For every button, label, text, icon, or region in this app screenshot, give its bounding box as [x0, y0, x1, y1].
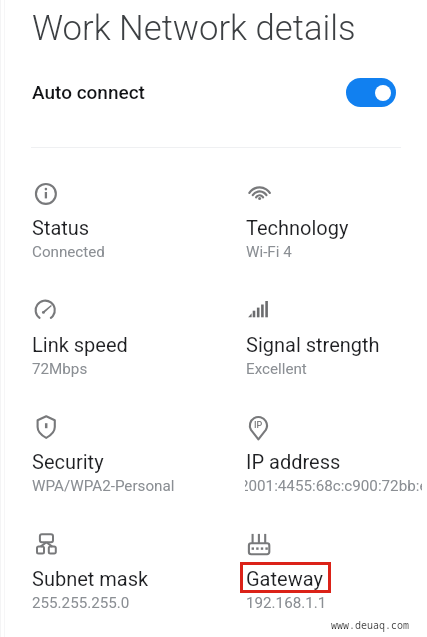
staticText: Signal strength [246, 333, 380, 356]
staticText: 192.168.1.1 [246, 594, 327, 612]
staticText: WPA/WPA2-Personal [32, 477, 175, 495]
button[interactable]: IP address [230, 406, 427, 506]
staticText: IP [254, 420, 263, 431]
button[interactable]: Security [16, 406, 213, 506]
staticText: Link speed [32, 333, 128, 356]
staticText: Subnet mask [32, 567, 149, 590]
staticText: Auto connect [32, 81, 145, 103]
button[interactable]: Gateway [230, 523, 427, 623]
staticText: Wi-Fi 4 [246, 243, 292, 261]
staticText: Technology [246, 216, 349, 239]
button[interactable]: Signal strength [230, 289, 427, 389]
staticText: Work Network details [32, 8, 356, 49]
staticText: 255.255.255.0 [32, 594, 130, 612]
button[interactable]: Auto connect [0, 70, 427, 114]
staticText: 72Mbps [32, 360, 88, 378]
staticText: Security [32, 450, 104, 473]
staticText: Excellent [246, 360, 307, 378]
button[interactable]: Subnet mask [16, 523, 213, 623]
button[interactable]: Status info [16, 172, 213, 272]
staticText: Connected [32, 243, 105, 261]
staticText: www.deuaq.com [331, 618, 409, 632]
staticText: Status [32, 216, 90, 239]
staticText: IP address [246, 450, 341, 473]
staticText: 2001:4455:68c:c900:72bb:e9 [245, 477, 422, 495]
button[interactable]: Technology [230, 172, 427, 272]
button[interactable]: Auto connect toggle [346, 78, 396, 107]
button[interactable]: Link speed [16, 289, 213, 389]
staticText: Gateway [246, 567, 323, 590]
